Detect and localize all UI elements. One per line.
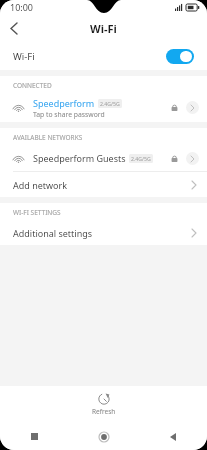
staticText: 2.4G/5G	[100, 100, 120, 107]
staticText: CONNECTED	[13, 81, 52, 90]
staticText: Speedperform Guests	[33, 152, 126, 164]
button[interactable]: Speedperform Guests	[0, 145, 207, 171]
button[interactable]: Back	[0, 14, 28, 42]
button[interactable]: Home	[69, 423, 138, 450]
staticText: Speedperform	[33, 97, 95, 109]
staticText: Wi-Fi	[13, 50, 35, 63]
button[interactable]: Back	[138, 423, 207, 450]
staticText: 2.4G/5G	[131, 155, 151, 162]
button[interactable]: Refresh	[0, 386, 207, 423]
button[interactable]: Wi-Fi	[0, 42, 207, 70]
staticText: AVAILABLE NETWORKS	[13, 133, 83, 142]
staticText: Add network	[13, 179, 68, 191]
staticText: Refresh	[92, 407, 116, 416]
button[interactable]: Speedperform	[0, 93, 207, 122]
button[interactable]: Add network	[0, 172, 207, 197]
staticText: Wi-Fi	[90, 21, 117, 36]
staticText: 10:00	[10, 1, 34, 13]
staticText: Tap to share password	[33, 110, 105, 119]
button[interactable]: Recents	[0, 423, 69, 450]
button[interactable]: Network details	[186, 152, 199, 165]
button[interactable]: Additional settings	[0, 220, 207, 245]
button[interactable]: Network details	[186, 101, 199, 114]
staticText: Additional settings	[13, 227, 93, 239]
staticText: WI-FI SETTINGS	[13, 208, 61, 217]
